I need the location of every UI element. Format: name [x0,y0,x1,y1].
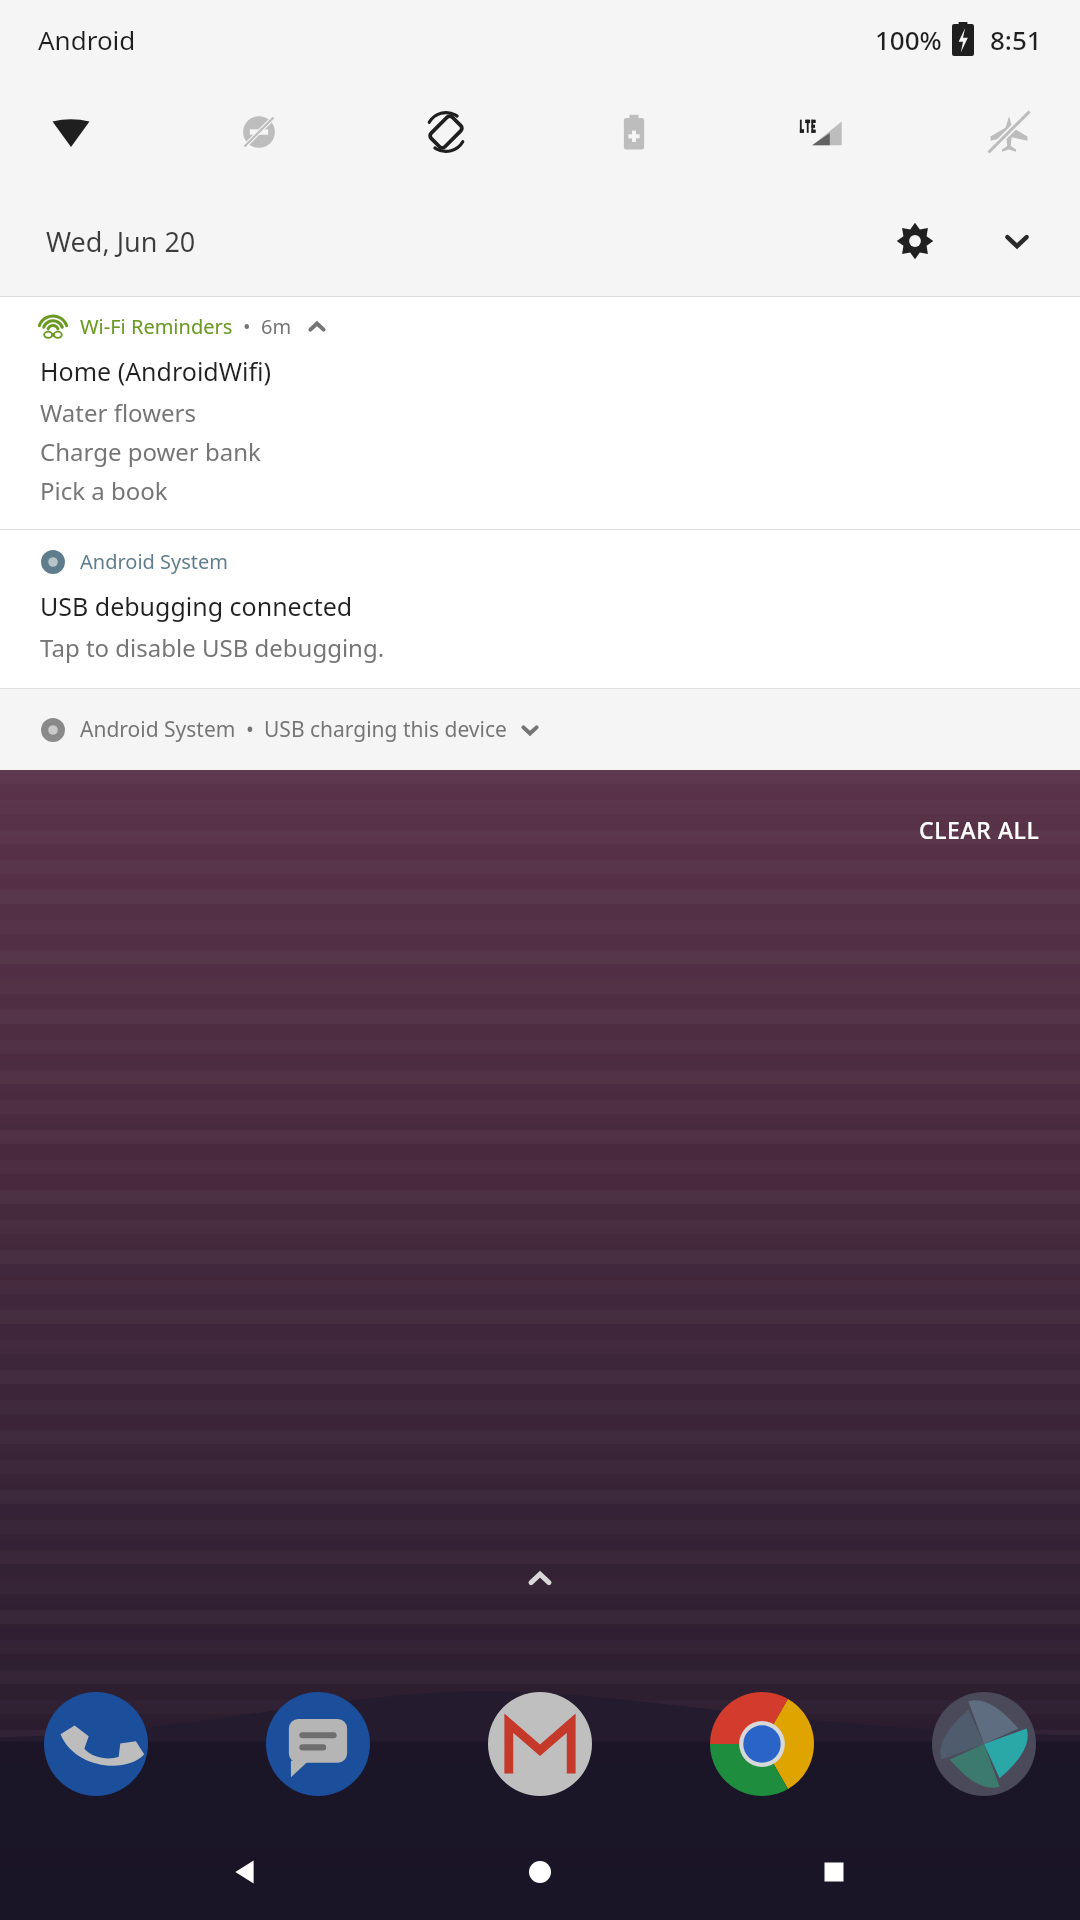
staticText: Android System [80,715,236,744]
staticText: USB debugging connected [40,589,353,623]
staticText: Android System [80,548,229,575]
staticText: 100% [875,22,942,57]
staticText: USB charging this device [264,715,507,744]
staticText: Android [38,22,136,57]
staticText: • [246,715,254,744]
staticText: Wed, Jun 20 [46,223,196,260]
button[interactable]: Back [198,1824,294,1920]
staticText: Pick a book [40,474,168,507]
button[interactable]: Airplane mode off [978,101,1040,163]
button[interactable]: Home [492,1824,588,1920]
button[interactable]: Android System [0,530,1080,688]
button[interactable]: Messages [262,1688,374,1800]
button[interactable]: Photos [928,1688,1040,1800]
button[interactable]: CLEAR ALL [897,800,1062,859]
staticText: 6m [261,313,292,340]
button[interactable]: Battery saver [603,101,665,163]
button[interactable]: Wi-Fi [40,101,102,163]
button[interactable]: Wi-Fi Reminders [0,297,1080,529]
button[interactable]: Open app drawer [517,1556,563,1602]
staticText: Water flowers [40,396,196,429]
staticText: Wi-Fi Reminders [80,313,233,340]
button[interactable]: Android System [0,689,1080,770]
button[interactable]: Recents [786,1824,882,1920]
button[interactable]: Gmail [484,1688,596,1800]
button[interactable]: Do not disturb off [228,101,290,163]
button[interactable]: Chrome [706,1688,818,1800]
staticText: CLEAR ALL [919,814,1040,845]
staticText: Charge power bank [40,435,261,468]
staticText: Tap to disable USB debugging. [40,631,385,664]
button[interactable]: Expand [984,208,1050,274]
button[interactable]: Auto rotate [415,101,477,163]
button[interactable]: Settings [882,208,948,274]
staticText: Home (AndroidWifi) [40,354,271,388]
button[interactable]: Phone [40,1688,152,1800]
button[interactable]: Mobile signal LTE [790,101,852,163]
staticText: 8:51 [990,22,1042,57]
staticText: • [243,313,251,340]
